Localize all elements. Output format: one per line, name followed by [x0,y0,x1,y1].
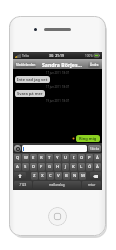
staticText: 17 jun 2011 18:07 [46,85,69,89]
staticText: 100% [85,54,93,58]
button[interactable]: M [79,172,86,180]
staticText: N [73,173,77,179]
staticText: V [57,173,60,179]
staticText: K [72,164,75,170]
button[interactable]: Home [48,207,67,226]
button[interactable]: Ö [86,163,93,171]
staticText: Sandra Börjes... [42,61,82,68]
button[interactable]: F [38,163,45,171]
button[interactable]: Q [14,154,21,162]
button[interactable]: S [22,163,29,171]
staticText: J [65,164,67,170]
button[interactable]: Backspace [90,172,101,180]
staticText: .?123 [19,183,27,187]
button[interactable]: Shift [14,172,26,180]
staticText: L [80,164,83,170]
button[interactable]: Ring mig [76,135,100,142]
button[interactable]: K [70,163,77,171]
button[interactable]: R [38,154,45,162]
button[interactable]: retur [82,181,101,189]
button[interactable]: N [71,172,78,180]
staticText: Skicka [90,147,100,151]
button[interactable]: Attach media [14,145,21,152]
button[interactable]: L [78,163,85,171]
button[interactable]: A [14,163,21,171]
button[interactable]: Å [94,154,101,162]
staticText: E [32,155,35,161]
button[interactable]: U [62,154,69,162]
button[interactable]: Y [54,154,61,162]
button[interactable]: E [30,154,37,162]
staticText: F [40,164,43,170]
staticText: retur [88,183,96,187]
staticText: M [81,173,85,179]
staticText: 19 jun 2011 18:07 [46,99,69,103]
button[interactable]: C [47,172,54,180]
staticText: mellanslag [49,183,65,187]
staticText: W [24,155,28,161]
button[interactable]: Inte vad jag vet [15,76,50,83]
staticText: S [24,164,27,170]
staticText: P [88,155,91,161]
button[interactable]: Ändra [88,61,100,68]
button[interactable]: O [78,154,85,162]
staticText: Å [96,155,99,161]
staticText: A [16,164,19,170]
button[interactable]: B [63,172,70,180]
button[interactable]: mellanslag [33,181,81,189]
staticText: X [41,173,44,179]
staticText: G [48,164,52,170]
staticText: Inte vad jag vet [17,77,48,82]
staticText: Ä [96,164,99,170]
staticText: C [49,173,52,179]
button[interactable]: Z [31,172,38,180]
button[interactable]: P [86,154,93,162]
button[interactable]: W [22,154,29,162]
button[interactable]: .?123 [14,181,32,189]
button[interactable]: Meddelanden [15,61,36,68]
staticText: U [64,155,68,161]
staticText: Ändra [90,63,99,67]
staticText: R [40,155,43,161]
staticText: O [80,155,84,161]
staticText: Telia [22,54,29,58]
button[interactable]: Ä [94,163,101,171]
staticText: D [32,164,36,170]
button[interactable]: G [46,163,53,171]
button[interactable]: I [70,154,77,162]
button[interactable]: V [55,172,62,180]
staticText: Meddelanden [16,63,36,67]
staticText: B [65,173,68,179]
button[interactable]: Skicka [88,145,101,152]
staticText: Q [16,155,20,161]
staticText: Ring mig [79,136,97,141]
button[interactable]: T [46,154,53,162]
button[interactable]: X [39,172,46,180]
staticText: 3G 21:19 [49,53,64,58]
staticText: T [48,155,51,161]
staticText: Y [56,155,59,161]
staticText: Ö [88,164,92,170]
button[interactable]: J [62,163,69,171]
button[interactable]: Svara på mer [15,90,45,97]
staticText: 17 jun 2011 18:07 [46,71,69,75]
button[interactable] [22,145,87,152]
staticText: Svara på mer [17,91,43,96]
button[interactable]: H [54,163,61,171]
staticText: I [73,155,75,161]
staticText: Z [33,173,36,179]
button[interactable]: D [30,163,37,171]
staticText: H [56,164,60,170]
